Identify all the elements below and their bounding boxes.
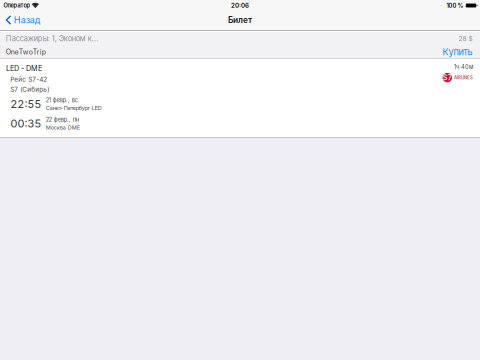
- staticText: S7: [443, 73, 452, 82]
- staticText: S7 (Сибирь): [10, 85, 49, 93]
- staticText: Купить: [442, 46, 472, 57]
- staticText: Назад: [14, 14, 41, 25]
- staticText: 21 февр., вс: [46, 97, 78, 104]
- button[interactable]: Купить: [442, 46, 472, 57]
- staticText: 100 %: [446, 2, 463, 9]
- staticText: 1ч 40м: [454, 64, 473, 70]
- staticText: Пассажиры: 1, Эконом к…: [6, 34, 98, 43]
- staticText: LED - DME: [6, 64, 42, 73]
- staticText: Оператор: [3, 2, 29, 9]
- staticText: AIRLINES: [454, 75, 473, 80]
- staticText: 22 февр., пн: [46, 116, 79, 123]
- button[interactable]: Назад: [0, 10, 47, 30]
- staticText: Билет: [228, 15, 252, 25]
- staticText: 28 $: [458, 34, 472, 42]
- staticText: Санкт-Петербург LED: [46, 105, 102, 111]
- staticText: Рейс S7-42: [10, 75, 47, 83]
- staticText: 00:35: [10, 117, 41, 130]
- staticText: Москва DME: [46, 124, 80, 131]
- staticText: 20:06: [231, 2, 249, 9]
- staticText: OneTwoTrip: [6, 48, 46, 56]
- staticText: 22:55: [10, 97, 41, 111]
